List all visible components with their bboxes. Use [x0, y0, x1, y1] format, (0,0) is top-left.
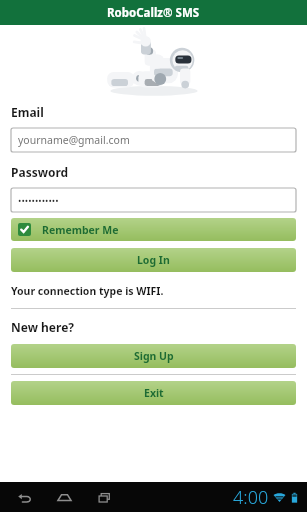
- button[interactable]: Back: [12, 485, 36, 509]
- staticText: Sign Up: [134, 349, 174, 363]
- staticText: ••••••••••••: [18, 194, 59, 206]
- staticText: New here?: [11, 319, 75, 335]
- staticText: Remember Me: [42, 223, 119, 237]
- other: Wi-Fi: [272, 490, 286, 504]
- staticText: Your connection type is WIFI.: [11, 284, 164, 298]
- button[interactable]: Log In: [11, 248, 296, 272]
- staticText: yourname@gmail.com: [18, 133, 130, 147]
- button[interactable]: Exit: [11, 381, 296, 405]
- button[interactable]: Recent apps: [92, 485, 116, 509]
- staticText: Password: [11, 164, 69, 180]
- other: Battery: [288, 491, 300, 503]
- button[interactable]: yourname@gmail.com: [11, 128, 296, 152]
- button[interactable]: Sign Up: [11, 344, 296, 368]
- staticText: Log In: [137, 253, 170, 267]
- button[interactable]: Home: [52, 485, 76, 509]
- staticText: RoboCallz® SMS: [107, 5, 200, 21]
- button[interactable]: ••••••••••••: [11, 188, 296, 212]
- staticText: Exit: [144, 386, 164, 400]
- staticText: Email: [11, 104, 44, 120]
- staticText: 4:00: [233, 485, 269, 510]
- button[interactable]: Remember Me: [11, 218, 296, 241]
